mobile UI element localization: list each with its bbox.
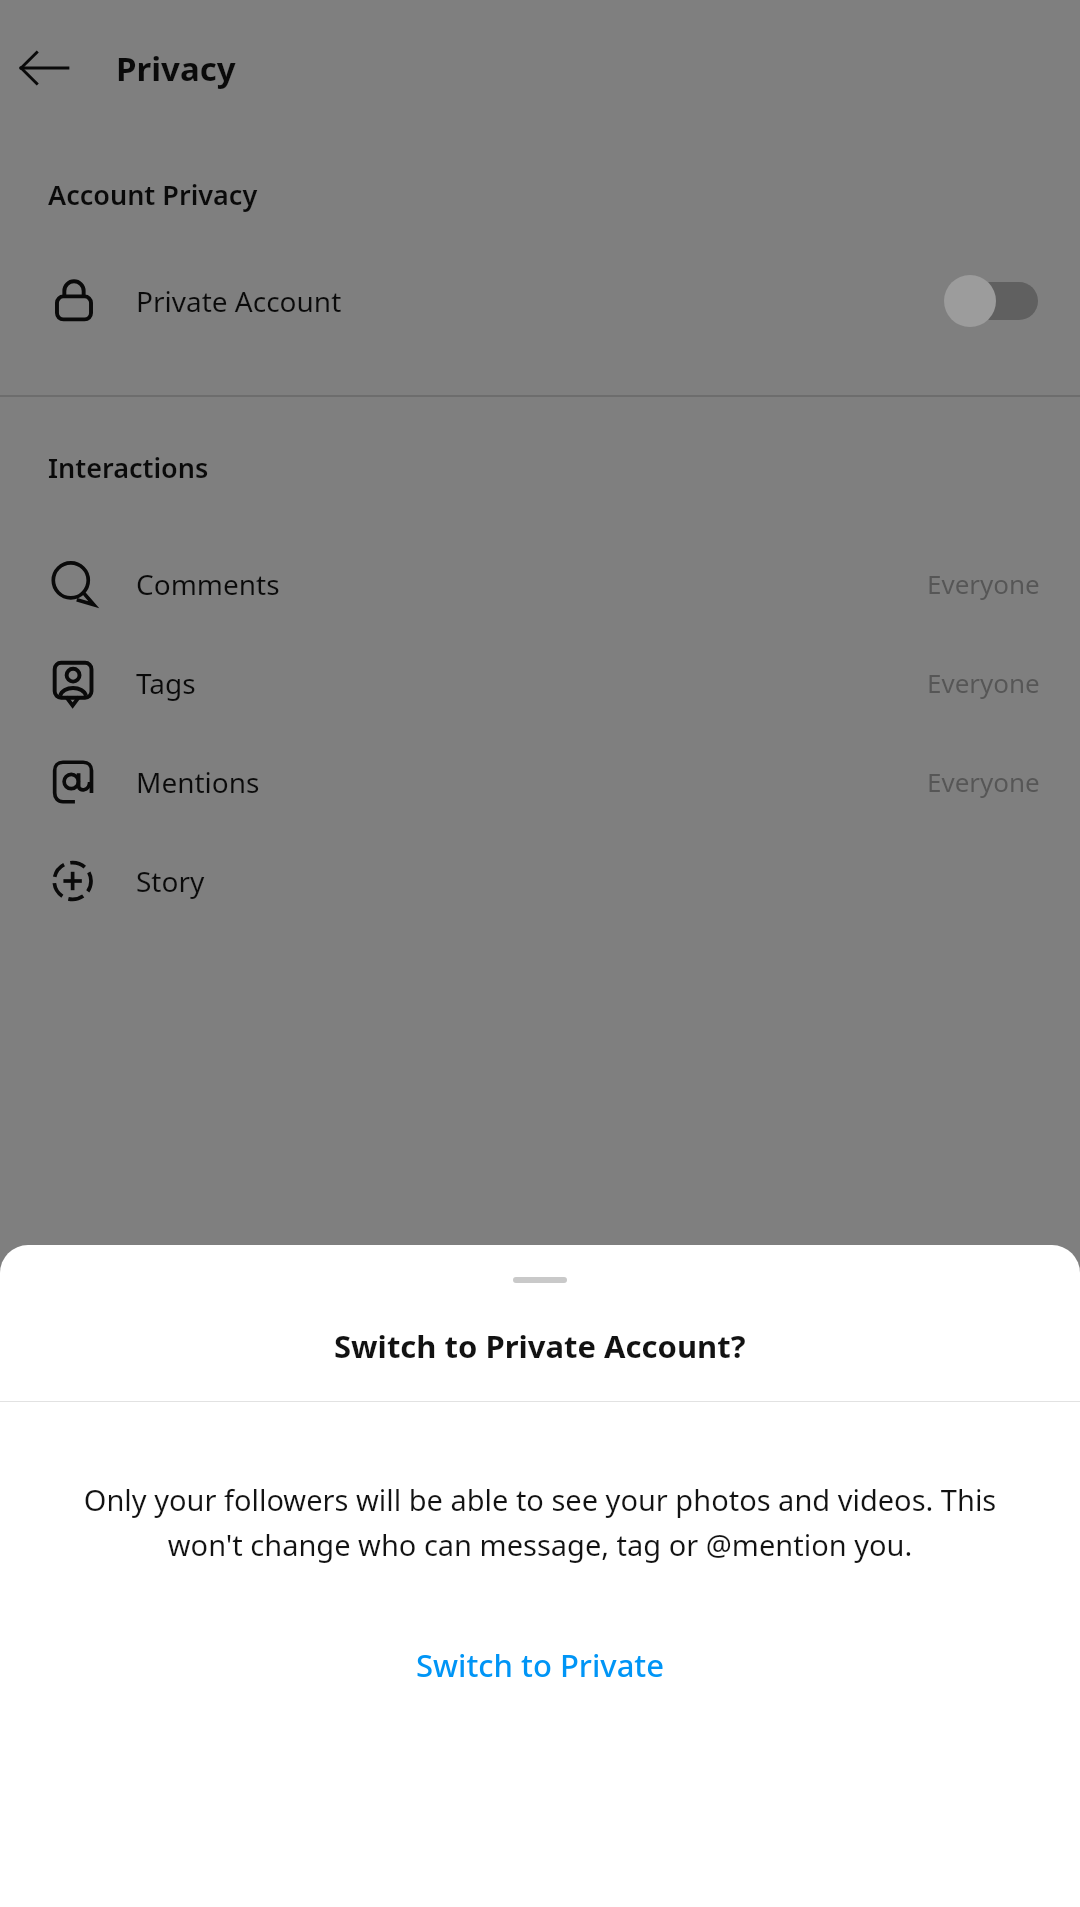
button[interactable]: Back [16, 40, 72, 96]
button[interactable]: Private Account [0, 265, 1080, 337]
staticText: Switch to Private [416, 1644, 665, 1686]
button[interactable]: Mentions [0, 732, 1080, 831]
staticText: Only your followers will be able to see … [62, 1480, 1018, 1565]
staticText: Everyone [927, 764, 1040, 799]
staticText: Interactions [48, 449, 209, 486]
staticText: Switch to Private Account? [334, 1325, 746, 1367]
staticText: Tags [136, 664, 196, 702]
staticText: Comments [136, 565, 280, 603]
staticText: Private Account [136, 282, 342, 320]
staticText: Account Privacy [48, 176, 258, 213]
staticText: Story [136, 862, 205, 900]
staticText: Privacy [116, 46, 236, 91]
staticText: Everyone [927, 665, 1040, 700]
button[interactable]: Switch to Private [0, 1621, 1080, 1709]
button[interactable]: Private Account switch, off [944, 275, 1038, 327]
button[interactable]: Story [0, 831, 1080, 930]
button[interactable]: Tags [0, 633, 1080, 732]
staticText: Mentions [136, 763, 260, 801]
staticText: Everyone [927, 566, 1040, 601]
button[interactable]: Comments [0, 534, 1080, 633]
